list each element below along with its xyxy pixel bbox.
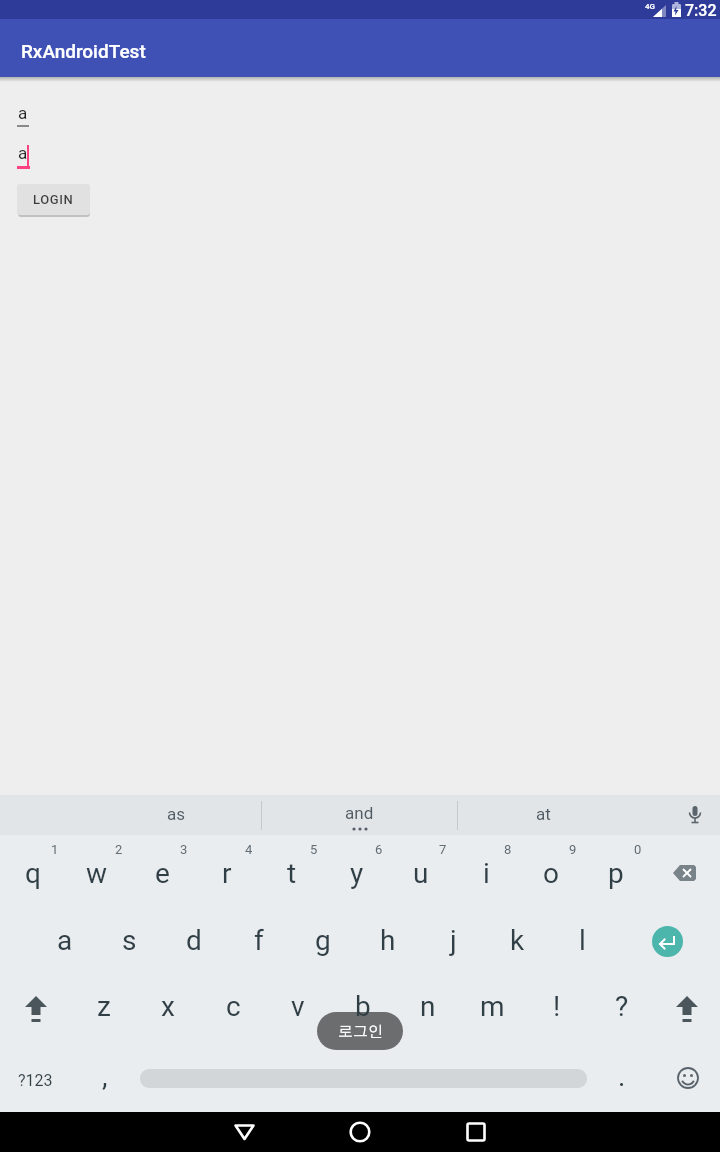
staticText: k [510,924,525,957]
staticText: h [380,924,396,957]
button[interactable]: r [197,847,257,899]
staticText: 0 [634,842,642,857]
staticText: a [57,924,73,957]
staticText: l [579,924,586,957]
button[interactable] [662,855,706,891]
button[interactable]: o [521,847,581,899]
staticText: 로그인 [338,1022,383,1041]
staticText: ! [553,990,561,1023]
staticText: 4 [245,842,253,857]
button[interactable]: j [423,914,483,966]
button[interactable]: m [463,980,521,1032]
button[interactable]: y [327,847,387,899]
staticText: 8 [504,842,512,857]
staticText: q [25,857,41,890]
staticText: LOGIN [33,192,74,207]
button[interactable]: k [487,914,547,966]
button[interactable] [666,1056,710,1100]
staticText: 6 [375,842,383,857]
button[interactable] [222,1110,266,1152]
staticText: ? [615,990,629,1023]
staticText: v [291,990,305,1023]
button[interactable]: d [164,914,224,966]
button[interactable]: ?123 [5,1058,65,1102]
staticText: 7 [439,842,447,857]
button[interactable] [688,806,702,826]
button[interactable]: and [299,800,419,826]
button[interactable]: b [334,980,392,1032]
button[interactable] [12,985,60,1033]
staticText: and [345,803,374,823]
staticText: 3 [180,842,188,857]
button[interactable]: s [99,914,159,966]
button[interactable]: LOGIN [17,184,90,215]
staticText: as [167,804,186,824]
staticText: 1 [51,842,59,857]
staticText: g [315,924,331,957]
button[interactable]: . [602,1054,642,1098]
button[interactable]: u [391,847,451,899]
button[interactable]: , [85,1054,125,1098]
staticText: , [102,1060,108,1093]
button[interactable]: at [483,799,603,829]
button[interactable] [338,1110,382,1152]
button[interactable]: f [229,914,289,966]
button[interactable] [663,985,711,1033]
staticText: n [420,990,436,1023]
button[interactable]: q [3,847,63,899]
button[interactable]: t [262,847,322,899]
staticText: f [254,924,264,957]
button[interactable]: v [269,980,327,1032]
staticText: p [608,857,624,890]
staticText: e [155,857,170,890]
staticText: y [350,857,364,890]
button[interactable]: c [204,980,262,1032]
staticText: . [618,1060,626,1093]
staticText: a [18,143,28,163]
button[interactable]: w [67,847,127,899]
staticText: b [355,990,371,1023]
staticText: 7:32 [685,1,717,20]
button[interactable]: l [552,914,612,966]
staticText: 5 [310,842,318,857]
button[interactable]: h [358,914,418,966]
staticText: j [450,924,457,957]
button[interactable]: z [75,980,133,1032]
staticText: o [543,857,559,890]
button[interactable]: ? [593,980,651,1032]
button[interactable]: ! [528,980,586,1032]
staticText: at [536,804,551,824]
staticText: ?123 [18,1071,53,1090]
button[interactable]: a [35,914,95,966]
button[interactable]: i [456,847,516,899]
button[interactable]: x [139,980,197,1032]
button[interactable]: as [116,799,236,829]
staticText: m [480,990,505,1023]
staticText: 2 [115,842,123,857]
staticText: RxAndroidTest [21,40,146,62]
staticText: c [226,990,241,1023]
button[interactable]: p [586,847,646,899]
staticText: x [161,990,175,1023]
staticText: z [97,990,111,1023]
staticText: i [483,857,490,890]
staticText: u [413,857,429,890]
staticText: w [86,857,108,890]
staticText: d [186,924,202,957]
staticText: t [287,857,297,890]
button[interactable]: n [399,980,457,1032]
button[interactable] [454,1110,498,1152]
staticText: 9 [569,842,577,857]
staticText: r [222,857,232,890]
button[interactable] [652,926,683,957]
staticText: 4G [645,2,655,11]
staticText: a [18,103,28,123]
button[interactable]: e [132,847,192,899]
button[interactable]: g [293,914,353,966]
staticText: s [122,924,137,957]
